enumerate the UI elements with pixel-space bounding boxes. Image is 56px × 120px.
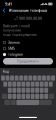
- staticText: +7 900 000-00-00: [14, 16, 42, 21]
- button[interactable]: Звонок: [0, 39, 56, 45]
- staticText: Изменение телефона: [9, 8, 47, 13]
- staticText: Выберите способ получения кода подтвержд…: [3, 24, 37, 36]
- staticText: Код: [3, 69, 9, 73]
- button[interactable]: Продолжить: [0, 58, 56, 65]
- button[interactable]: Telegram: [0, 51, 56, 57]
- staticText: Звонок: [8, 40, 20, 45]
- staticText: Telegram: [8, 52, 23, 57]
- button[interactable]: SMS: [0, 45, 56, 51]
- button[interactable]: Back: [0, 7, 8, 13]
- staticText: Продолжить: [17, 59, 39, 63]
- staticText: 9:41: [5, 1, 12, 7]
- staticText: SMS: [8, 46, 15, 51]
